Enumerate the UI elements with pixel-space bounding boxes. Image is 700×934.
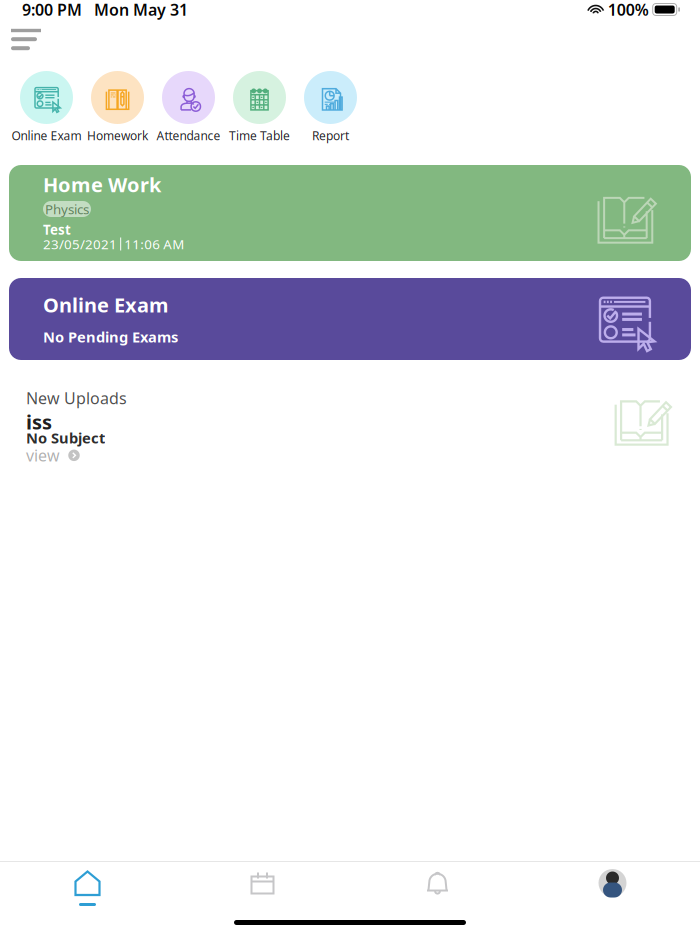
staticText: Home Work xyxy=(43,171,161,198)
staticText: Report xyxy=(312,127,349,143)
staticText: Online Exam xyxy=(11,127,81,143)
staticText: No Pending Exams xyxy=(43,327,178,346)
staticText: Physics xyxy=(45,200,89,218)
button[interactable]: Report xyxy=(295,71,366,142)
staticText: Attendance xyxy=(156,127,220,143)
staticText: 9:00 PM xyxy=(22,0,82,20)
button[interactable]: Online Exam xyxy=(9,278,691,360)
staticText: New Uploads xyxy=(26,387,127,409)
button[interactable]: Attendance xyxy=(153,71,224,142)
staticText: 23/05/2021 xyxy=(43,235,120,253)
staticText: Homework xyxy=(87,127,148,143)
staticText: Online Exam xyxy=(43,291,169,318)
button[interactable]: Home Work xyxy=(9,165,691,261)
staticText: iss xyxy=(26,409,52,435)
button[interactable]: Calendar xyxy=(175,862,350,910)
button[interactable]: Homework xyxy=(82,71,153,142)
staticText: Test xyxy=(43,221,71,238)
staticText: 11:06 AM xyxy=(121,235,184,253)
staticText: 100% xyxy=(604,0,653,20)
button[interactable]: Home xyxy=(0,862,175,910)
button[interactable]: Profile xyxy=(525,862,700,910)
staticText: No Subject xyxy=(26,428,105,448)
button[interactable]: Online Exam xyxy=(11,71,82,142)
staticText: view xyxy=(26,445,60,466)
staticText: Time Table xyxy=(229,127,290,143)
button[interactable]: iss xyxy=(26,405,700,463)
button[interactable]: Menu xyxy=(0,21,55,58)
button[interactable]: Time Table xyxy=(224,71,295,142)
button[interactable]: Notifications xyxy=(350,862,525,910)
staticText: Mon May 31 xyxy=(82,0,188,20)
